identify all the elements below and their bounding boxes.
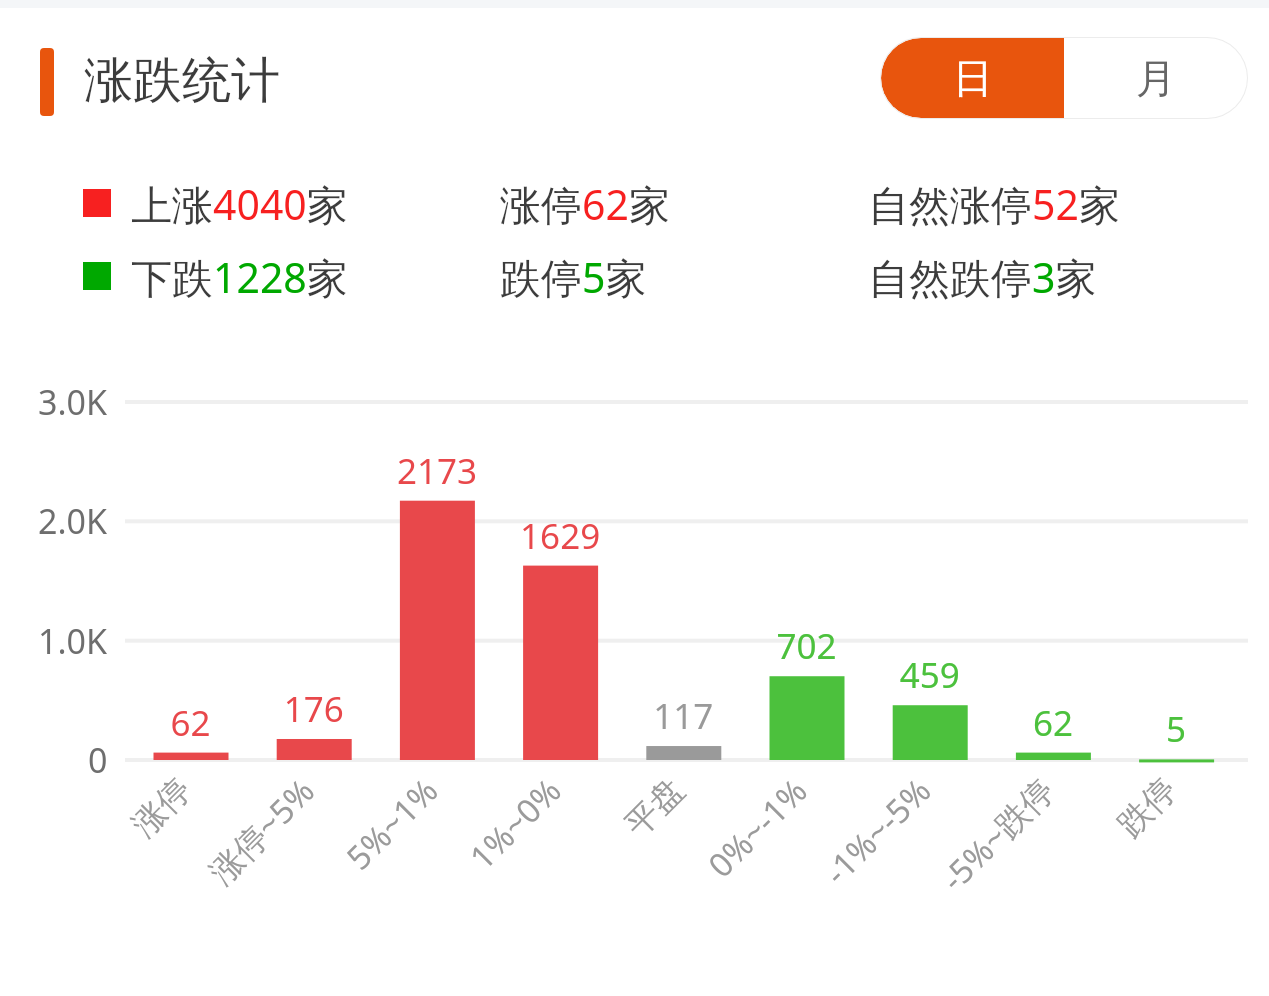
staticText: 涨跌统计	[84, 50, 280, 112]
staticText: 跌停5家	[500, 249, 647, 305]
staticText: 上涨4040家	[131, 176, 348, 232]
staticText: 自然跌停3家	[868, 249, 1097, 305]
staticText: 下跌1228家	[131, 249, 348, 305]
staticText: 涨停62家	[500, 176, 670, 232]
button[interactable]: 日	[881, 38, 1064, 118]
staticText: 月	[1136, 53, 1176, 103]
button[interactable]: 月	[1064, 38, 1247, 118]
staticText: 自然涨停52家	[868, 176, 1120, 232]
staticText: 日	[953, 53, 993, 103]
